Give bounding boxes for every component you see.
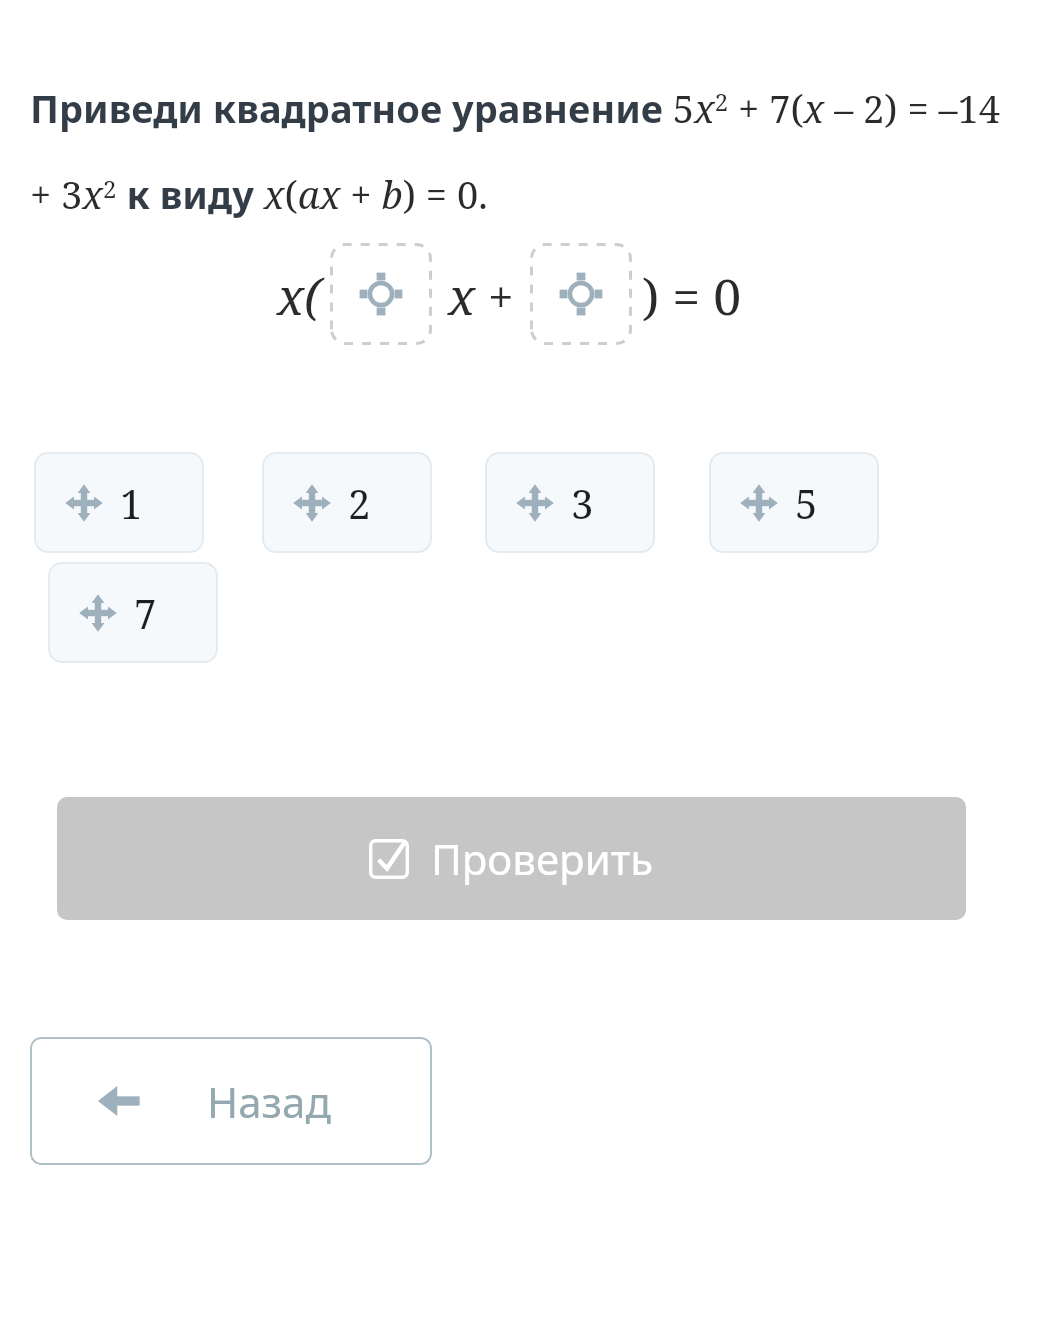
- staticText: Проверить: [431, 830, 654, 887]
- button[interactable]: Проверить: [57, 797, 966, 920]
- staticText: 2: [348, 476, 371, 530]
- staticText: Назад: [207, 1073, 331, 1130]
- staticText: 7: [134, 586, 157, 640]
- staticText: ) = 0: [642, 262, 742, 330]
- button[interactable]: Назад: [30, 1037, 432, 1165]
- staticText: 1: [120, 476, 143, 530]
- button[interactable]: Поле для ответа: [330, 243, 432, 345]
- staticText: Приведи квадратное уравнение 5x2 + 7(x –…: [30, 82, 1015, 220]
- button[interactable]: Поле для ответа: [530, 243, 632, 345]
- button[interactable]: 1: [34, 452, 204, 553]
- staticText: x(: [277, 262, 322, 330]
- button[interactable]: 3: [485, 452, 655, 553]
- button[interactable]: 2: [262, 452, 432, 553]
- button[interactable]: 5: [709, 452, 879, 553]
- button[interactable]: 7: [48, 562, 218, 663]
- staticText: 5: [795, 476, 818, 530]
- staticText: +: [488, 265, 514, 328]
- staticText: 3: [571, 476, 594, 530]
- staticText: x: [448, 262, 476, 330]
